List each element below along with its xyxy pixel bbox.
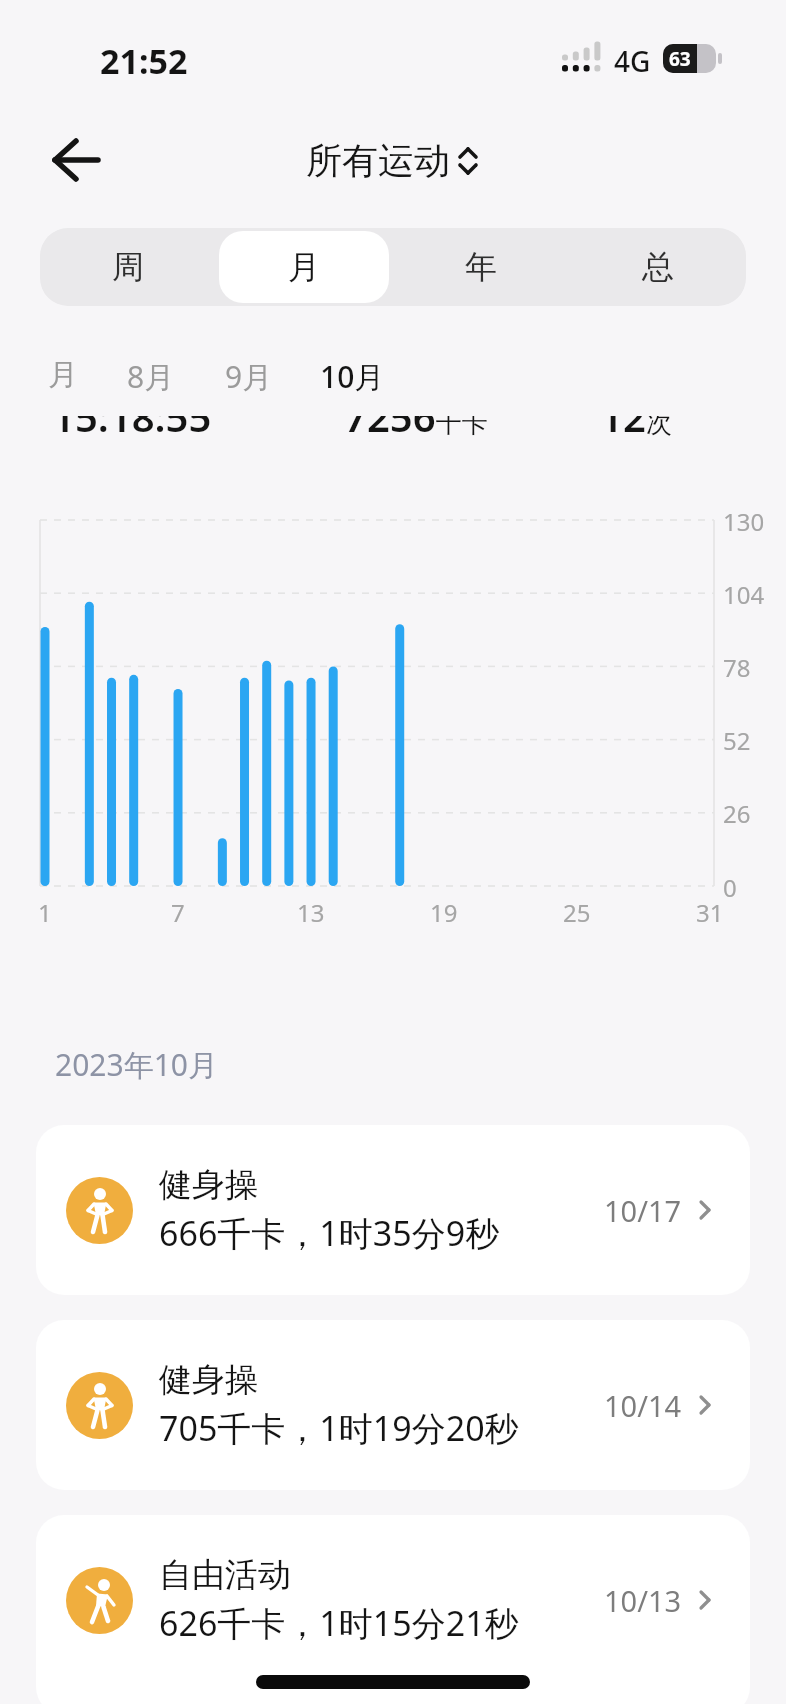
staticText: 15:18:55: [52, 416, 212, 438]
staticText: 1: [38, 896, 52, 929]
staticText: 21:52: [100, 38, 188, 84]
staticText: 10/17: [604, 1191, 682, 1230]
staticText: 所有运动: [306, 138, 450, 183]
staticText: 10月: [320, 356, 385, 397]
staticText: 666千卡，1时35分9秒: [159, 1210, 500, 1256]
staticText: 2023年10月: [55, 1044, 218, 1085]
button[interactable]: 自由活动: [36, 1515, 750, 1704]
staticText: 13: [297, 896, 325, 929]
staticText: 月: [288, 247, 320, 287]
button[interactable]: 年: [395, 231, 566, 303]
staticText: 9月: [225, 356, 273, 397]
button[interactable]: 健身操: [36, 1320, 750, 1490]
button[interactable]: 周: [43, 231, 213, 303]
staticText: 25: [563, 896, 591, 929]
staticText: 周: [112, 247, 144, 287]
button[interactable]: 总: [572, 231, 743, 303]
staticText: 52: [723, 724, 751, 757]
staticText: 705千卡，1时19分20秒: [159, 1405, 519, 1451]
staticText: 19: [430, 896, 458, 929]
staticText: 130: [723, 505, 765, 538]
button[interactable]: [40, 132, 112, 188]
staticText: 63: [669, 46, 691, 72]
staticText: 104: [723, 578, 765, 611]
staticText: 0: [723, 871, 737, 904]
staticText: 年: [465, 247, 497, 287]
staticText: 31: [696, 896, 724, 929]
staticText: 8月: [127, 356, 175, 397]
staticText: 健身操: [159, 1359, 258, 1401]
staticText: 10/14: [604, 1386, 682, 1425]
staticText: 10/13: [604, 1581, 682, 1620]
button[interactable]: 所有运动: [306, 138, 480, 183]
staticText: 总: [642, 247, 674, 287]
staticText: 78: [723, 651, 751, 684]
staticText: 月: [48, 356, 78, 394]
staticText: 7256千卡: [344, 416, 488, 438]
staticText: 626千卡，1时15分21秒: [159, 1600, 519, 1646]
staticText: 4G: [614, 42, 651, 80]
staticText: 自由活动: [159, 1554, 291, 1596]
staticText: 26: [723, 797, 751, 830]
button[interactable]: 月: [219, 231, 389, 303]
staticText: 7: [171, 896, 185, 929]
button[interactable]: 健身操: [36, 1125, 750, 1295]
staticText: 12次: [600, 416, 672, 438]
staticText: 健身操: [159, 1164, 258, 1206]
